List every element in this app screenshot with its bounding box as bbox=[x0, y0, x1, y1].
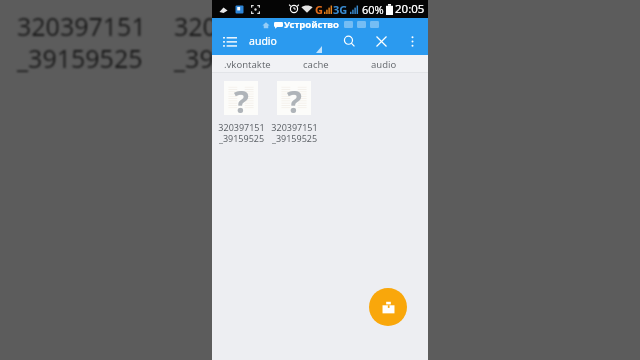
staticText: cache bbox=[303, 58, 329, 69]
staticText: 320397151 _39159525 bbox=[271, 121, 318, 144]
staticText: audio bbox=[371, 58, 397, 69]
staticText: 320397151 _39159525 bbox=[17, 9, 146, 75]
button[interactable]: ? bbox=[277, 81, 311, 144]
staticText: ? bbox=[287, 80, 302, 114]
button[interactable]: Home bbox=[259, 18, 273, 33]
button[interactable]: Close bbox=[370, 33, 392, 55]
button[interactable]: New folder bbox=[369, 288, 407, 326]
staticText: 20:05 bbox=[395, 1, 425, 17]
button[interactable]: cache bbox=[297, 55, 335, 72]
staticText: audio bbox=[249, 34, 277, 48]
button[interactable]: More options bbox=[403, 33, 421, 55]
button[interactable]: Tab bbox=[368, 18, 381, 33]
staticText: G bbox=[315, 2, 323, 17]
button[interactable]: Устройство bbox=[274, 18, 339, 33]
button[interactable]: Tab bbox=[342, 18, 355, 33]
button[interactable]: Search bbox=[338, 33, 360, 55]
staticText: Устройство bbox=[284, 18, 339, 31]
staticText: 320397151 _39159525 bbox=[174, 9, 303, 75]
button[interactable]: Menu bbox=[212, 33, 237, 55]
button[interactable]: ? bbox=[224, 81, 258, 144]
staticText: 60% bbox=[362, 2, 384, 17]
staticText: 320397151 _39159525 bbox=[218, 121, 265, 144]
button[interactable]: Tab bbox=[355, 18, 368, 33]
button[interactable]: .vkontakte bbox=[218, 55, 277, 72]
staticText: .vkontakte bbox=[224, 58, 271, 69]
staticText: 3G bbox=[333, 2, 348, 17]
button[interactable]: audio bbox=[365, 55, 403, 72]
staticText: ? bbox=[234, 80, 249, 114]
